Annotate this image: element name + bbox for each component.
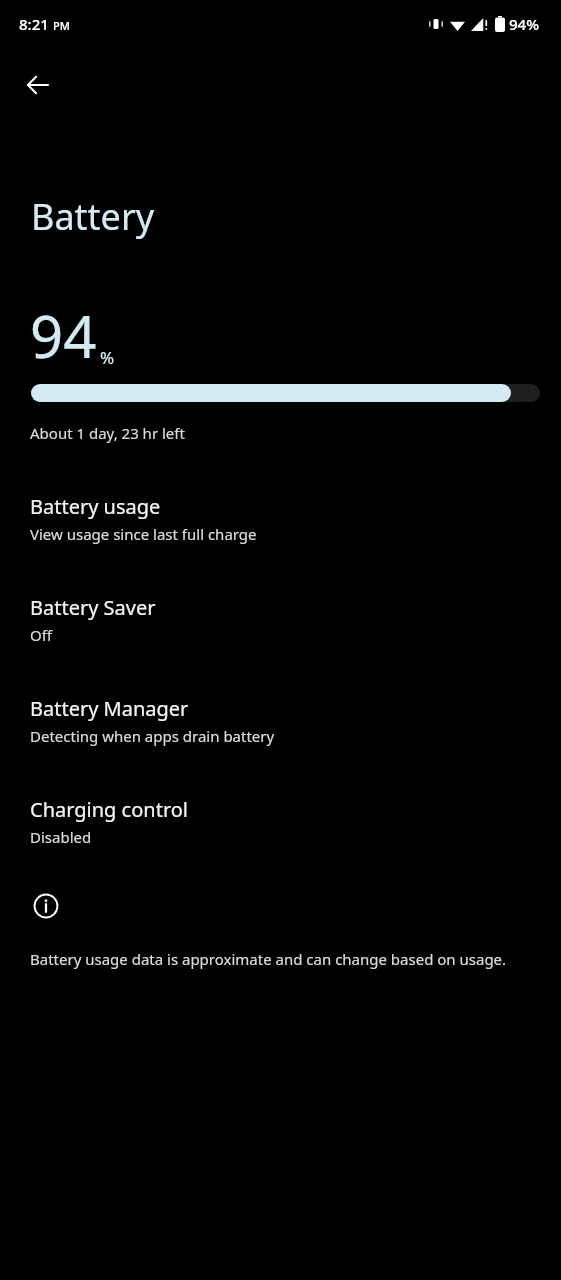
button[interactable]: Battery usage	[0, 489, 561, 577]
staticText: Battery usage data is approximate and ca…	[30, 949, 526, 969]
staticText: Battery Saver	[30, 594, 156, 621]
button[interactable]: Back	[10, 57, 66, 113]
staticText: PM	[53, 18, 70, 33]
button[interactable]: Battery Saver	[0, 590, 561, 678]
staticText: Off	[30, 625, 53, 645]
staticText: Detecting when apps drain battery	[30, 726, 275, 746]
staticText: Battery usage	[30, 493, 161, 520]
button[interactable]: Charging control	[0, 792, 561, 880]
staticText: View usage since last full charge	[30, 524, 257, 544]
staticText: 94%	[509, 14, 539, 34]
staticText: Disabled	[30, 827, 92, 847]
staticText: Battery Manager	[30, 695, 189, 722]
staticText: 8:21	[19, 14, 49, 34]
staticText: About 1 day, 23 hr left	[30, 423, 185, 443]
staticText: %	[100, 346, 115, 369]
button[interactable]: Battery Manager	[0, 691, 561, 779]
staticText: 94	[30, 296, 97, 375]
staticText: Battery	[31, 192, 155, 241]
staticText: Charging control	[30, 796, 188, 823]
